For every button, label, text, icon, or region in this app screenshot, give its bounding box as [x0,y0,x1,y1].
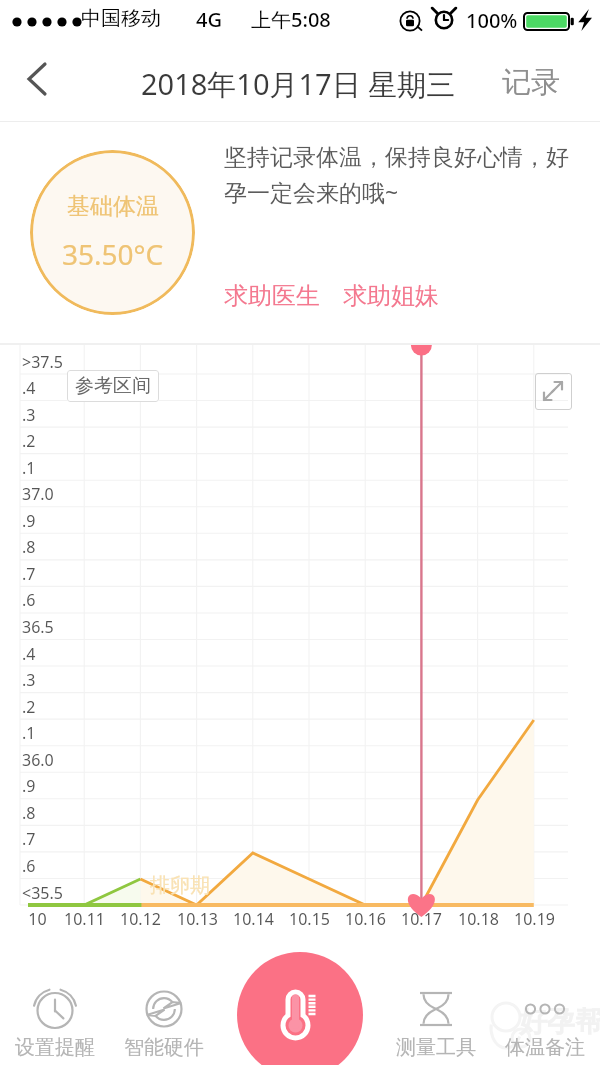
staticText: 10.19 [514,908,555,930]
button[interactable]: 测量工具 [380,980,492,1065]
staticText: 上午5:08 [251,6,331,33]
staticText: 10.13 [177,908,218,930]
staticText: 求助姐妹 [343,281,439,311]
staticText: .4 [22,377,36,399]
button[interactable]: 求助医生 [224,281,320,311]
staticText: 35.50°C [62,235,164,273]
staticText: 10.12 [120,908,161,930]
staticText: 37.0 [22,483,54,505]
staticText: 参考区间 [75,374,151,398]
staticText: .9 [22,775,36,797]
button[interactable]: Back [13,55,61,103]
staticText: 智能硬件 [124,1035,204,1060]
staticText: .7 [22,828,36,850]
staticText: .2 [22,430,36,452]
staticText: 10.18 [458,908,499,930]
button[interactable]: Expand chart [535,373,572,410]
staticText: 10.14 [233,908,274,930]
staticText: .9 [22,510,36,532]
staticText: 2018年10月17日 星期三 [141,64,456,104]
staticText: .8 [22,536,36,558]
staticText: 10.17 [401,908,442,930]
staticText: .2 [22,696,36,718]
staticText: 体温备注 [505,1035,585,1060]
staticText: .7 [22,563,36,585]
button[interactable]: Record temperature [237,952,363,1065]
staticText: 坚持记录体温，保持良好心情，好孕一定会来的哦~ [224,143,584,208]
staticText: .6 [22,589,36,611]
button[interactable]: 智能硬件 [108,980,220,1065]
staticText: .3 [22,404,36,426]
staticText: 10.16 [345,908,386,930]
staticText: .1 [22,457,36,479]
button[interactable]: 体温备注 [489,980,600,1065]
staticText: 排卵期 [150,873,210,898]
button[interactable]: 求助姐妹 [343,281,439,311]
staticText: 好孕帮 [519,1004,600,1039]
staticText: 中国移动 [81,6,161,31]
staticText: .1 [22,722,36,744]
staticText: 基础体温 [67,192,159,221]
staticText: .3 [22,669,36,691]
staticText: 测量工具 [396,1035,476,1060]
staticText: 求助医生 [224,281,320,311]
staticText: 4G [196,6,222,33]
staticText: .6 [22,855,36,877]
staticText: .4 [22,643,36,665]
staticText: 记录 [502,64,560,101]
staticText: <35.5 [22,882,63,904]
button[interactable]: 基础体温 [30,150,195,315]
staticText: 设置提醒 [15,1035,95,1060]
staticText: 100% [466,7,518,34]
button[interactable]: 设置提醒 [0,980,111,1065]
staticText: 10 [28,908,47,930]
staticText: 36.0 [22,749,54,771]
button[interactable]: 参考区间 [67,370,159,402]
button[interactable]: 记录 [494,64,568,101]
staticText: 10.11 [64,908,105,930]
staticText: 10.15 [289,908,330,930]
staticText: .8 [22,802,36,824]
staticText: >37.5 [22,351,63,373]
staticText: 36.5 [22,616,54,638]
